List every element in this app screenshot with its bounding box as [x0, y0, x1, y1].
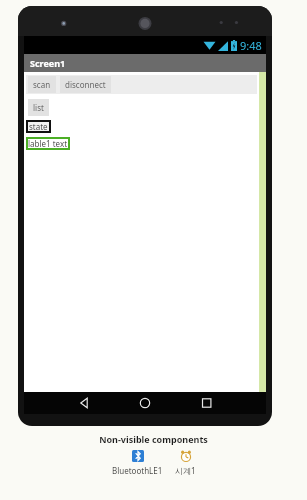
- staticText: Screen1: [30, 57, 66, 69]
- staticText: disconnect: [65, 79, 106, 90]
- staticText: 시계1: [175, 465, 196, 476]
- button[interactable]: scan: [28, 76, 56, 93]
- staticText: BluetoothLE1: [112, 465, 163, 476]
- button[interactable]: state: [26, 120, 51, 133]
- button[interactable]: Clock component 시계1: [172, 450, 199, 476]
- staticText: 9:48: [240, 38, 262, 53]
- staticText: list: [33, 102, 44, 113]
- staticText: state: [29, 121, 48, 132]
- button[interactable]: disconnect: [60, 76, 111, 93]
- staticText: lable1 text: [28, 138, 68, 149]
- staticText: scan: [33, 79, 51, 90]
- button[interactable]: lable1 text: [26, 137, 70, 150]
- staticText: Non-visible components: [99, 433, 208, 445]
- button[interactable]: BluetoothLE1 component: [109, 450, 166, 476]
- button[interactable]: list: [28, 99, 49, 116]
